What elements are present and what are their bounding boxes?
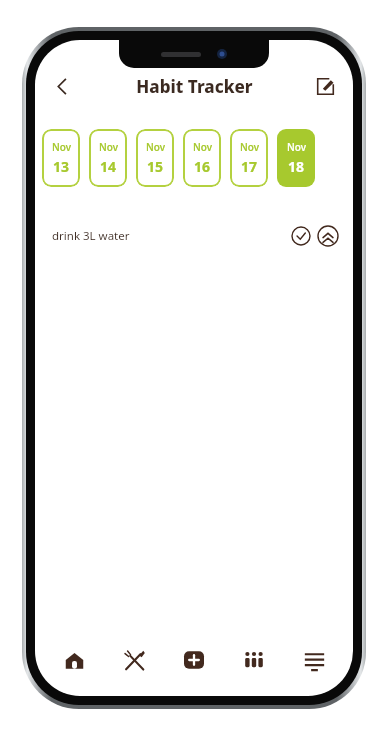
button[interactable]: drink 3L water	[35, 219, 353, 253]
staticText: Nov	[99, 140, 118, 154]
staticText: 14	[100, 157, 117, 176]
staticText: 15	[147, 157, 164, 176]
button[interactable]: Add	[164, 637, 224, 683]
staticText: 13	[53, 157, 70, 176]
button[interactable]: Back	[45, 69, 79, 103]
button[interactable]: Home	[44, 637, 104, 683]
staticText: Nov	[146, 140, 165, 154]
button[interactable]: Nov	[89, 129, 127, 187]
staticText: 18	[288, 157, 305, 176]
button[interactable]: Meals	[104, 637, 164, 683]
button[interactable]: Mark complete	[290, 225, 312, 247]
staticText: 16	[194, 157, 211, 176]
button[interactable]: Nov	[42, 129, 80, 187]
button[interactable]: Edit	[308, 69, 342, 103]
staticText: Nov	[287, 140, 306, 154]
button[interactable]: Community	[224, 637, 284, 683]
staticText: Nov	[52, 140, 71, 154]
staticText: Nov	[193, 140, 212, 154]
staticText: Nov	[240, 140, 259, 154]
staticText: 17	[241, 157, 258, 176]
staticText: Habit Tracker	[136, 75, 253, 98]
button[interactable]: Nov	[136, 129, 174, 187]
button[interactable]: Menu	[284, 637, 344, 683]
staticText: drink 3L water	[52, 228, 130, 244]
button[interactable]: Nov	[277, 129, 315, 187]
button[interactable]: Expand	[316, 224, 340, 248]
button[interactable]: Nov	[183, 129, 221, 187]
button[interactable]: Nov	[230, 129, 268, 187]
